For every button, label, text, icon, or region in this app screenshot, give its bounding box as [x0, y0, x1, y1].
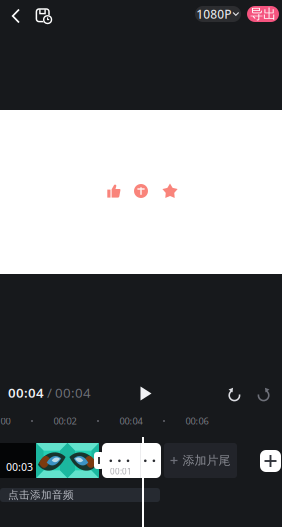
staticText: 1080P [196, 6, 231, 22]
staticText: 添加片尾 [182, 453, 230, 468]
button[interactable]: 添加片尾 [164, 443, 237, 478]
staticText: / [44, 384, 55, 401]
staticText: 00:04 [55, 384, 91, 401]
staticText: 00:00 [0, 415, 10, 427]
button[interactable]: Back [5, 6, 27, 26]
button[interactable]: 导出 [247, 6, 279, 22]
staticText: 00:04 [119, 415, 142, 427]
button[interactable]: Play [140, 386, 152, 400]
button[interactable]: Save draft [34, 6, 54, 26]
staticText: 点击添加音频 [8, 488, 74, 501]
staticText: 导出 [250, 6, 276, 22]
button[interactable]: 点击添加音频 [0, 488, 160, 502]
button[interactable]: Redo [256, 386, 272, 402]
button[interactable]: Add clip [260, 450, 281, 472]
staticText: 00:06 [185, 415, 208, 427]
staticText: 00:03 [6, 460, 33, 474]
button[interactable]: 1080P [195, 6, 241, 22]
staticText: 00:04 [8, 384, 44, 401]
button[interactable]: Undo [226, 386, 242, 402]
staticText: 00:01 [110, 466, 132, 477]
staticText: 00:02 [53, 415, 76, 427]
